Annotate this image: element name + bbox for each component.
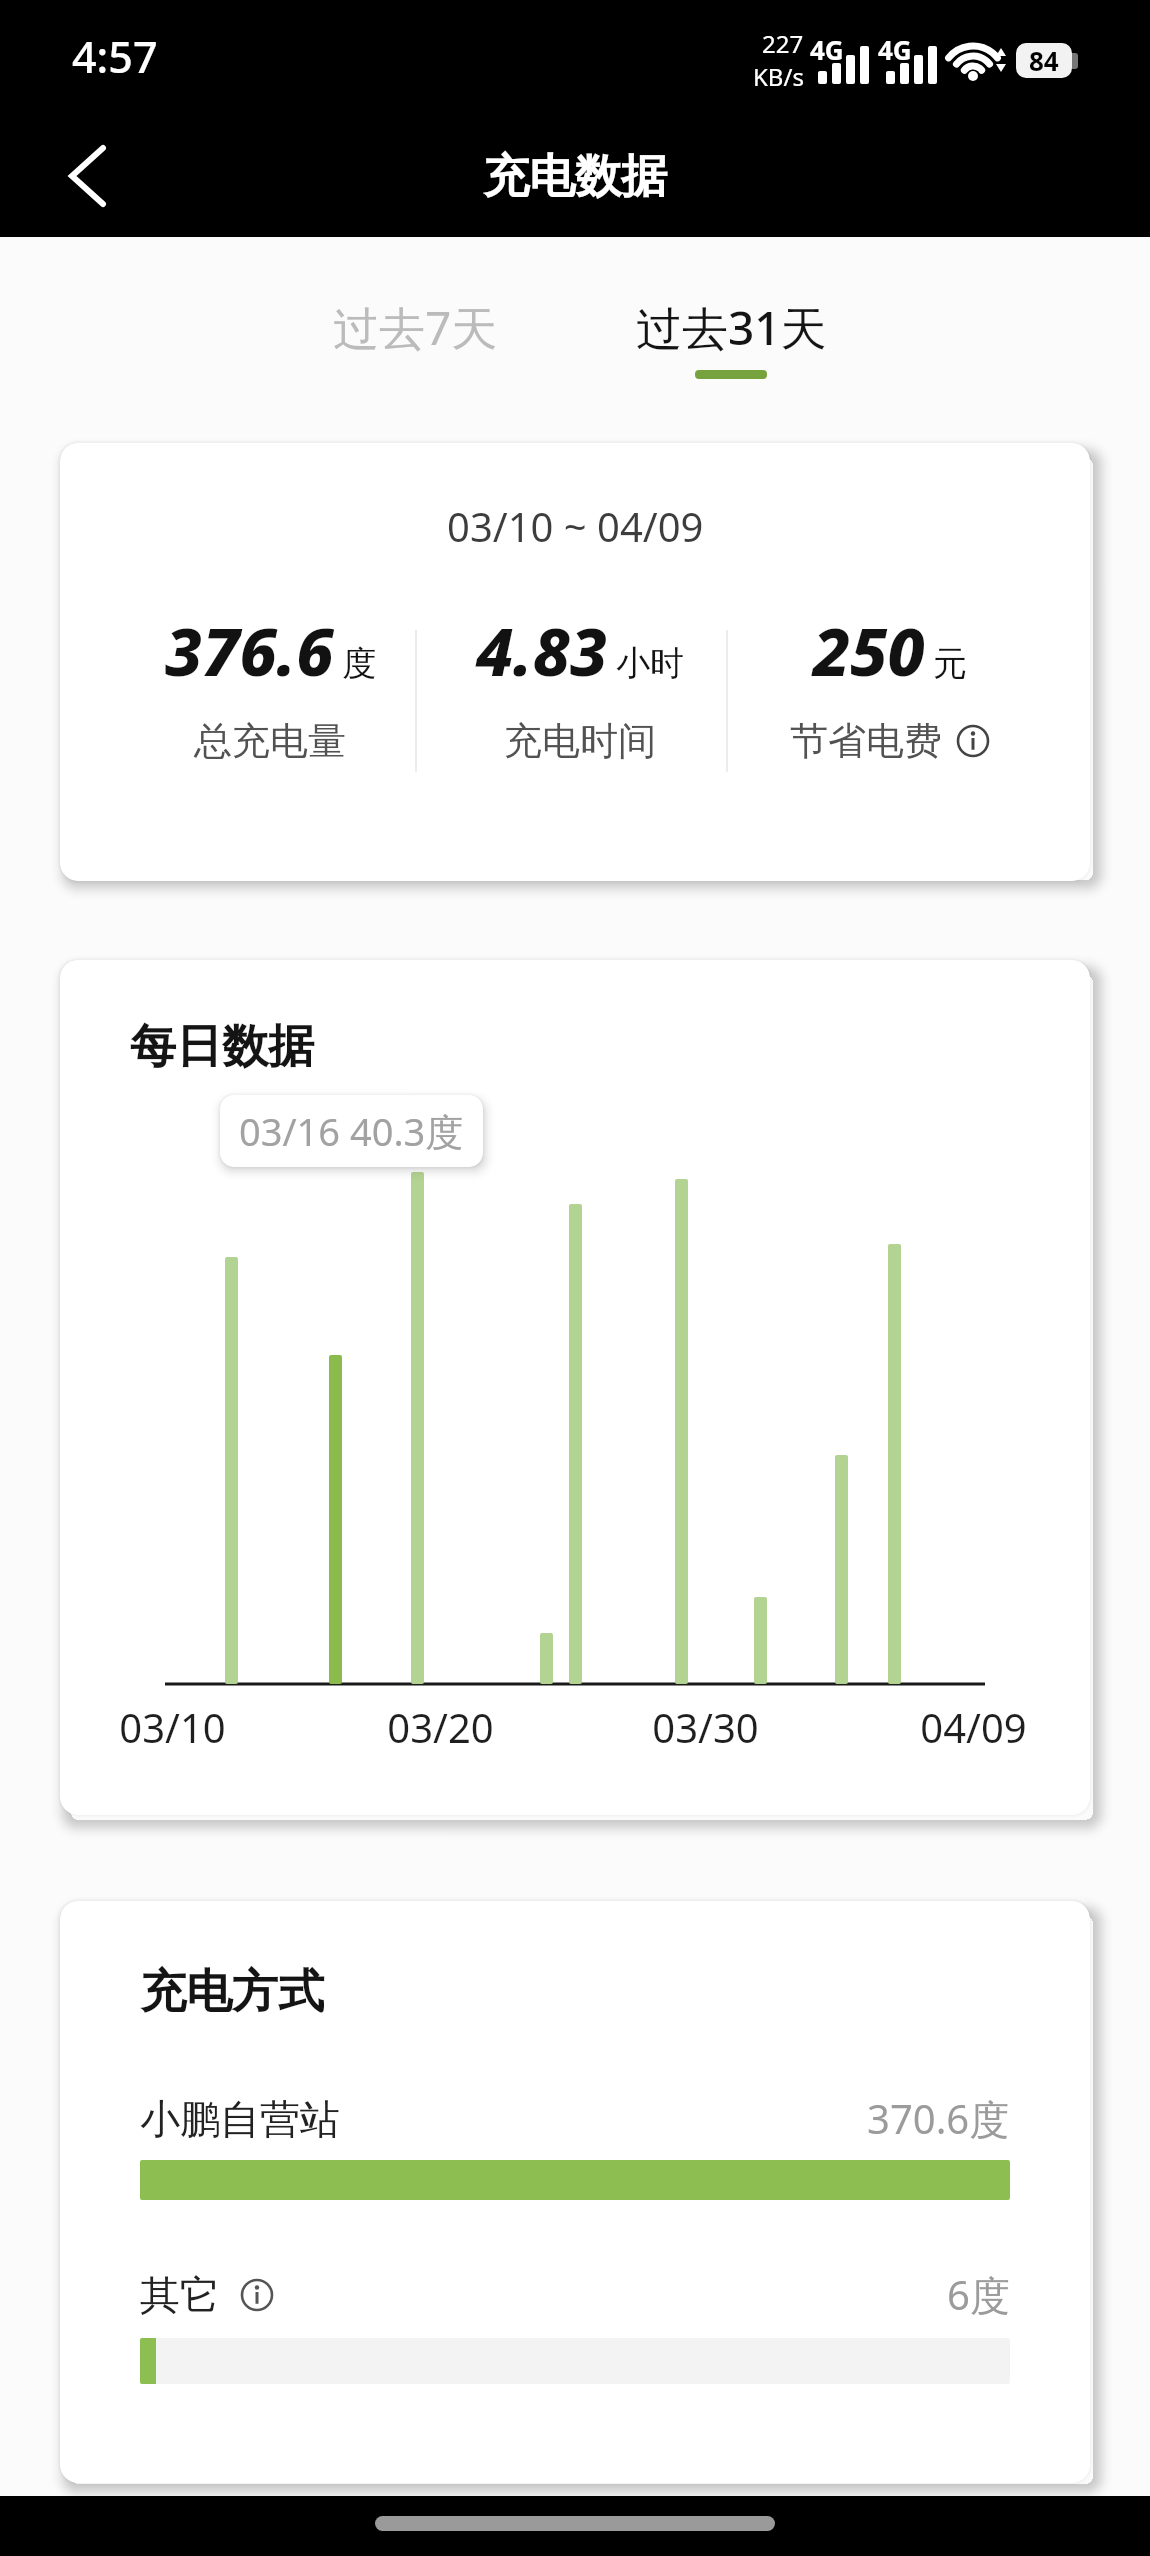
staticText: 04/09 <box>920 1700 1027 1754</box>
button[interactable]: 过去7天 <box>300 292 530 362</box>
staticText: 元 <box>933 642 967 685</box>
staticText: 充电方式 <box>140 1963 324 2021</box>
staticText: 370.6度 <box>867 2091 1010 2146</box>
staticText: 充电时间 <box>504 717 656 765</box>
staticText: 4:57 <box>72 27 158 86</box>
staticText: 过去31天 <box>636 296 827 359</box>
staticText: 4.83 <box>476 605 608 695</box>
staticText: 充电数据 <box>483 148 667 206</box>
staticText: 小鹏自营站 <box>140 2094 340 2144</box>
staticText: 03/20 <box>387 1700 494 1754</box>
button[interactable] <box>48 138 124 214</box>
button[interactable] <box>240 2278 274 2312</box>
staticText: 小时 <box>616 642 684 685</box>
staticText: 03/10 <box>119 1700 226 1754</box>
staticText: 03/30 <box>652 1700 759 1754</box>
button[interactable] <box>140 2338 1010 2384</box>
staticText: 4G <box>878 32 912 67</box>
staticText: 227 <box>762 27 804 60</box>
staticText: 84 <box>1029 43 1059 78</box>
button[interactable]: 250 <box>730 605 1050 765</box>
button[interactable] <box>956 724 990 758</box>
staticText: 4G <box>810 32 844 67</box>
button[interactable]: 过去31天 <box>616 292 846 362</box>
staticText: KB/s <box>753 60 804 93</box>
staticText: 03/16 40.3度 <box>239 1105 464 1157</box>
staticText: 6度 <box>947 2267 1010 2322</box>
staticText: 过去7天 <box>333 296 498 359</box>
staticText: 节省电费 <box>790 717 942 765</box>
staticText: 03/10 ~ 04/09 <box>447 499 704 553</box>
staticText: 376.6 <box>165 605 334 695</box>
staticText: 其它 <box>140 2270 220 2320</box>
button[interactable]: 376.6 <box>110 605 430 765</box>
button[interactable]: 4.83 <box>420 605 740 765</box>
staticText: 250 <box>813 605 925 695</box>
staticText: 总充电量 <box>194 717 346 765</box>
staticText: 度 <box>342 642 376 685</box>
staticText: 每日数据 <box>130 1018 314 1076</box>
